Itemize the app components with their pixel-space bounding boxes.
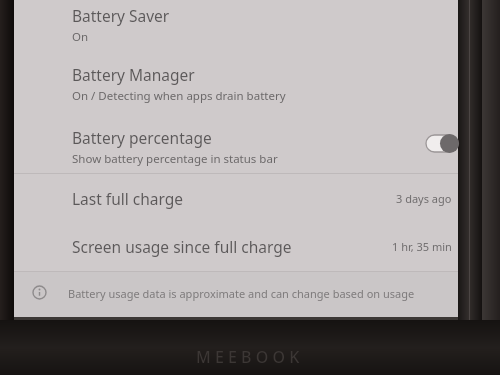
staticText: On / Detecting when apps drain battery (72, 88, 286, 104)
staticText: 3 days ago (396, 191, 452, 206)
staticText: Battery Saver (72, 5, 170, 26)
staticText: Battery percentage (72, 127, 212, 148)
staticText: 1 hr, 35 min (392, 239, 452, 254)
staticText: Battery Manager (72, 64, 195, 85)
button[interactable]: Battery Saver (14, 2, 458, 60)
button[interactable]: Last full charge (14, 174, 458, 222)
staticText: Last full charge (72, 188, 184, 209)
staticText: MEEBOOK (196, 346, 304, 368)
other: Info (32, 285, 47, 300)
button[interactable]: Battery percentage toggle (418, 128, 466, 158)
button[interactable]: Battery percentage (14, 124, 458, 172)
staticText: Show battery percentage in status bar (72, 151, 278, 167)
button[interactable]: Screen usage since full charge (14, 222, 458, 270)
staticText: Battery usage data is approximate and ca… (68, 286, 415, 301)
staticText: Screen usage since full charge (72, 236, 292, 257)
button[interactable]: Battery Manager (14, 61, 458, 119)
staticText: On (72, 29, 89, 45)
